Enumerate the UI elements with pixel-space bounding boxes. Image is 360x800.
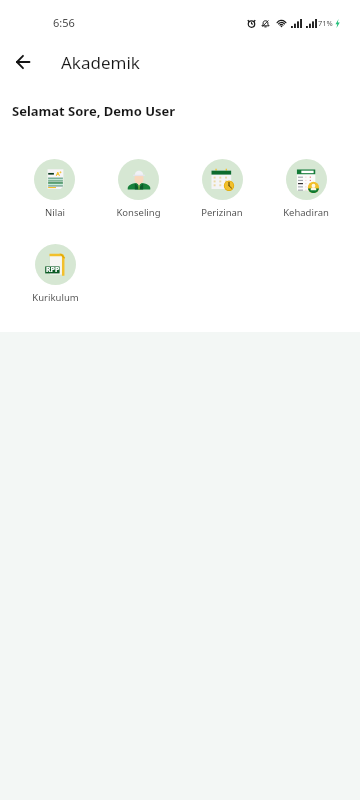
button[interactable]: Kehadiran <box>264 159 348 219</box>
button[interactable]: Back <box>6 45 40 79</box>
staticText: Selamat Sore, Demo User <box>12 102 176 120</box>
staticText: 6:56 <box>53 15 75 30</box>
staticText: RPP <box>46 265 60 275</box>
button[interactable]: Konseling <box>96 159 180 219</box>
staticText: Akademik <box>61 51 140 74</box>
staticText: 71% <box>318 18 333 28</box>
staticText: Konseling <box>116 206 161 219</box>
staticText: Kurikulum <box>32 291 79 304</box>
button[interactable]: Nilai <box>13 159 96 219</box>
button[interactable]: Perizinan <box>180 159 264 219</box>
staticText: Perizinan <box>201 206 243 219</box>
staticText: Kehadiran <box>283 206 329 219</box>
button[interactable]: RPP <box>13 244 97 304</box>
staticText: Nilai <box>45 206 65 219</box>
